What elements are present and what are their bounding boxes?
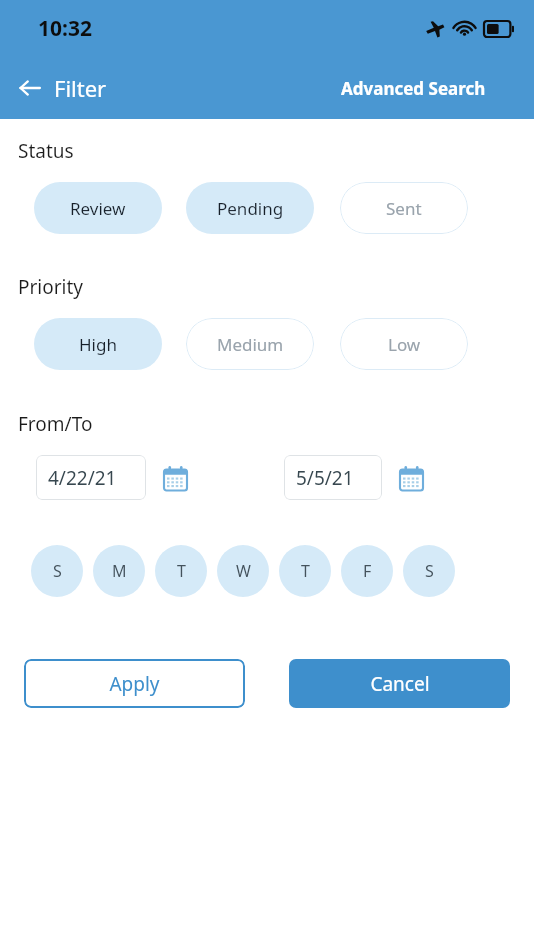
staticText: Sent: [386, 197, 422, 220]
button[interactable]: Medium: [186, 318, 314, 370]
staticText: T: [177, 560, 186, 582]
staticText: W: [236, 560, 251, 582]
button[interactable]: Low: [340, 318, 468, 370]
button[interactable]: T: [155, 545, 207, 597]
button[interactable]: S: [31, 545, 83, 597]
button[interactable]: Pick date: [392, 459, 430, 497]
staticText: Priority: [18, 274, 84, 300]
staticText: Low: [388, 333, 421, 356]
button[interactable]: Pending: [186, 182, 314, 234]
staticText: Advanced Search: [341, 77, 486, 100]
staticText: S: [425, 560, 434, 582]
staticText: From/To: [18, 411, 93, 437]
staticText: Pending: [217, 197, 284, 220]
staticText: 10:32: [38, 14, 92, 43]
button[interactable]: 5/5/21: [284, 455, 382, 500]
staticText: M: [112, 560, 127, 582]
button[interactable]: Back: [10, 68, 50, 108]
button[interactable]: Apply: [24, 659, 245, 708]
staticText: T: [301, 560, 310, 582]
button[interactable]: Pick date: [156, 459, 194, 497]
button[interactable]: Sent: [340, 182, 468, 234]
staticText: Apply: [109, 671, 160, 697]
staticText: F: [363, 560, 372, 582]
staticText: S: [53, 560, 62, 582]
staticText: Review: [70, 197, 126, 220]
staticText: Filter: [54, 73, 107, 103]
button[interactable]: 4/22/21: [36, 455, 146, 500]
button[interactable]: Advanced Search: [335, 73, 492, 104]
staticText: Medium: [217, 333, 284, 356]
staticText: High: [79, 333, 117, 356]
button[interactable]: M: [93, 545, 145, 597]
button[interactable]: T: [279, 545, 331, 597]
button[interactable]: Cancel: [289, 659, 510, 708]
staticText: Status: [18, 138, 74, 164]
button[interactable]: High: [34, 318, 162, 370]
staticText: 4/22/21: [48, 465, 117, 491]
button[interactable]: Review: [34, 182, 162, 234]
button[interactable]: S: [403, 545, 455, 597]
button[interactable]: F: [341, 545, 393, 597]
staticText: Cancel: [370, 671, 430, 697]
staticText: 5/5/21: [296, 465, 354, 491]
button[interactable]: W: [217, 545, 269, 597]
